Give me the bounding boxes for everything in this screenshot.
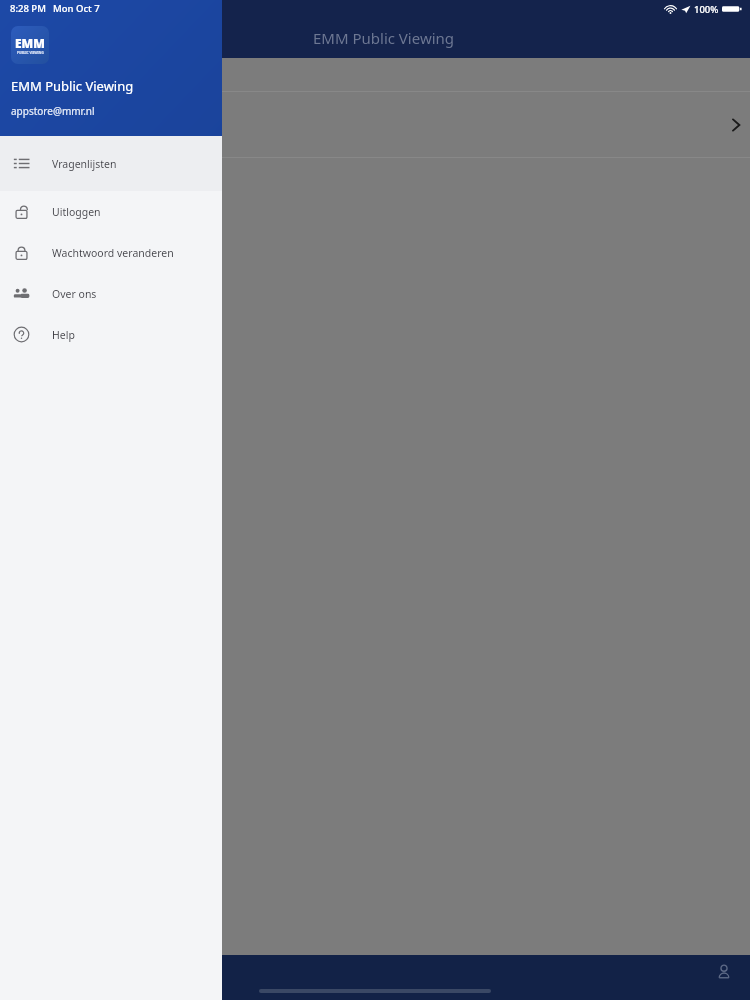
button[interactable]: Account — [711, 959, 737, 985]
staticText: appstore@mmr.nl — [11, 104, 95, 118]
staticText: EMM Public Viewing — [313, 28, 455, 48]
staticText: Over ons — [52, 287, 97, 301]
other: Open — [730, 115, 742, 135]
staticText: Vragenlijsten — [52, 157, 117, 171]
staticText: Help — [52, 328, 75, 342]
button[interactable]: Help — [0, 314, 222, 355]
button[interactable]: Uitloggen — [0, 191, 222, 232]
button[interactable]: Wachtwoord veranderen — [0, 232, 222, 273]
staticText: PUBLIC VIEWING — [17, 51, 44, 55]
staticText: Uitloggen — [52, 205, 101, 219]
staticText: Wachtwoord veranderen — [52, 246, 174, 260]
staticText: Mon Oct 7 — [53, 2, 100, 15]
staticText: 8:28 PM — [10, 2, 46, 15]
staticText: EMM — [15, 35, 45, 51]
staticText: 100% — [694, 3, 719, 16]
staticText: EMM Public Viewing — [11, 77, 134, 95]
button[interactable]: Over ons — [0, 273, 222, 314]
button[interactable]: Vragenlijsten — [0, 136, 222, 191]
